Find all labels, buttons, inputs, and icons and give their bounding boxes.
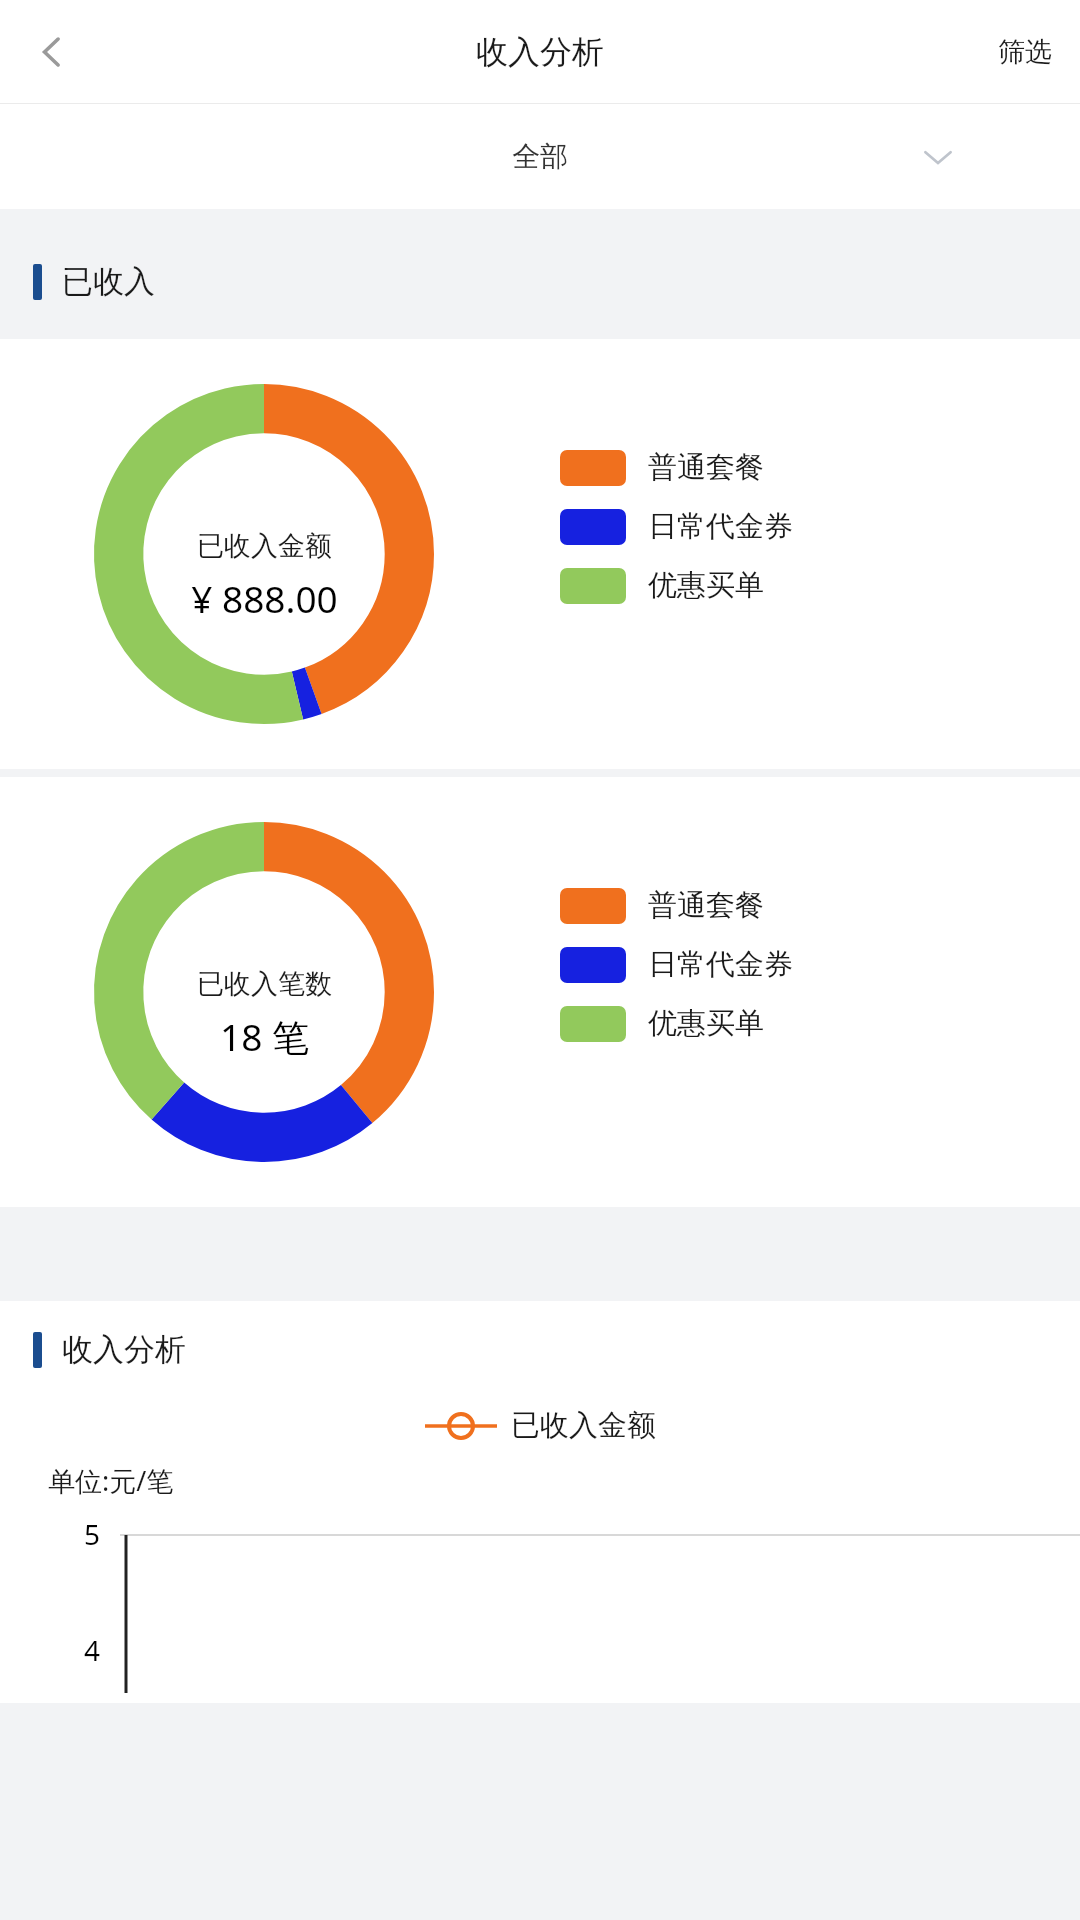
staticText: ¥ 888.00	[191, 573, 338, 623]
staticText: 筛选	[998, 35, 1052, 69]
staticText: 已收入金额	[197, 529, 332, 563]
button[interactable]: 日常代金券	[560, 508, 793, 545]
staticText: 日常代金券	[648, 946, 793, 983]
staticText: 优惠买单	[648, 1005, 764, 1042]
button[interactable]: 优惠买单	[560, 1005, 764, 1042]
button[interactable]: Back	[20, 20, 84, 84]
other: Expand	[918, 137, 958, 177]
button[interactable]: 全部	[0, 104, 1080, 209]
staticText: 优惠买单	[648, 567, 764, 604]
staticText: 已收入金额	[511, 1407, 656, 1444]
staticText: 5	[84, 1515, 101, 1553]
staticText: 普通套餐	[648, 449, 764, 486]
staticText: 普通套餐	[648, 887, 764, 924]
staticText: 日常代金券	[648, 508, 793, 545]
button[interactable]: 普通套餐	[560, 449, 764, 486]
staticText: 4	[84, 1631, 101, 1669]
staticText: 全部	[512, 139, 568, 174]
button[interactable]: 筛选	[970, 19, 1080, 85]
staticText: 18 笔	[220, 1011, 309, 1062]
button[interactable]: 普通套餐	[560, 887, 764, 924]
button[interactable]: 优惠买单	[560, 567, 764, 604]
staticText: 单位:元/笔	[48, 1462, 174, 1499]
staticText: 已收入	[62, 262, 155, 301]
staticText: 收入分析	[62, 1330, 186, 1369]
button[interactable]: 日常代金券	[560, 946, 793, 983]
staticText: 已收入笔数	[197, 967, 332, 1001]
staticText: 收入分析	[476, 32, 604, 72]
